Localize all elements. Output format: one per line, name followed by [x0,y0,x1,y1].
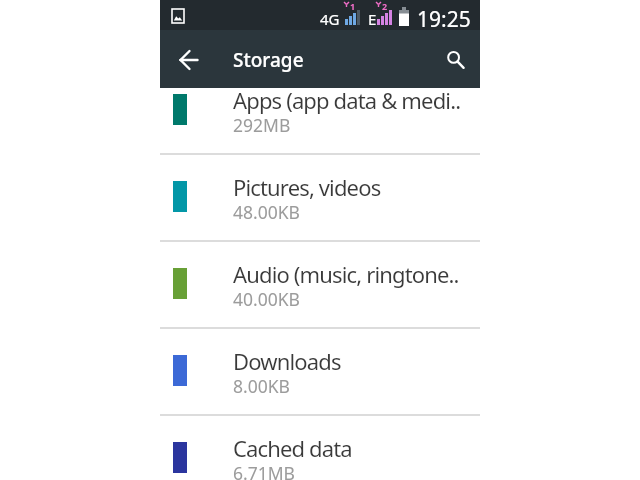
staticText: 292MB [233,113,291,137]
button[interactable]: Pictures, videos [160,153,480,240]
button[interactable] [432,36,480,84]
button[interactable]: Cached data [160,414,480,480]
staticText: Cached data [233,433,352,463]
staticText: 1 [350,0,356,12]
staticText: Apps (app data & medi.. [233,85,461,115]
staticText: 4G [320,9,340,29]
staticText: Pictures, videos [233,172,381,202]
button[interactable]: Audio (music, ringtone.. [160,240,480,327]
staticText: 40.00KB [233,287,300,311]
staticText: 8.00KB [233,374,290,398]
staticText: 48.00KB [233,200,300,224]
staticText: E [368,9,377,29]
staticText: 6.71MB [233,461,295,480]
staticText: Storage [233,47,304,73]
button[interactable]: Apps (app data & medi.. [160,66,480,153]
button[interactable] [165,36,213,84]
staticText: Downloads [233,346,341,376]
staticText: 19:25 [417,5,471,34]
button[interactable]: Downloads [160,327,480,414]
staticText: Audio (music, ringtone.. [233,259,459,289]
staticText: 2 [382,0,388,12]
